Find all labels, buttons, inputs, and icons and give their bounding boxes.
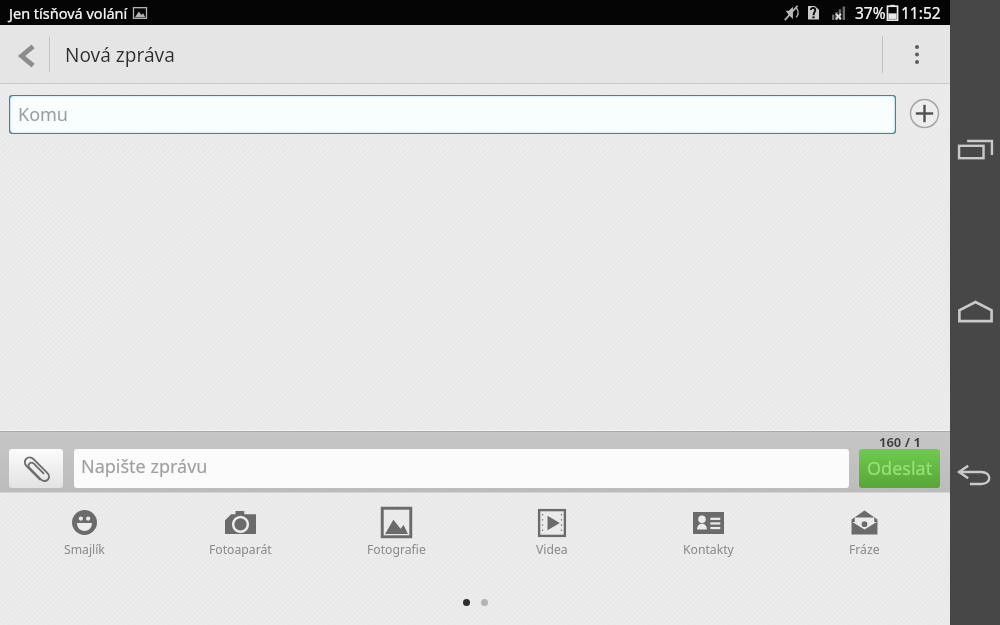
button[interactable]: Komu (9, 95, 896, 134)
button[interactable]: Back (950, 449, 1000, 499)
button[interactable]: Fotoaparát (162, 493, 318, 563)
button[interactable]: More options (883, 25, 950, 84)
button[interactable]: Add recipient (906, 95, 942, 131)
staticText: Nová zpráva (65, 42, 175, 68)
staticText: 11:52 (901, 2, 941, 23)
button[interactable]: Back (0, 25, 49, 84)
staticText: Smajlík (64, 541, 105, 558)
button[interactable]: Kontakty (630, 493, 786, 563)
staticText: 37% (855, 2, 886, 23)
button[interactable]: Odeslat (859, 449, 940, 488)
staticText: 160 / 1 (879, 433, 921, 451)
staticText: Fotoaparát (209, 541, 272, 558)
button[interactable]: Fotografie (318, 493, 474, 563)
staticText: Komu (18, 102, 68, 127)
button[interactable]: Attach (9, 449, 63, 488)
staticText: Odeslat (867, 456, 933, 481)
button[interactable]: Videa (474, 493, 630, 563)
button[interactable]: Napište zprávu (74, 449, 849, 488)
staticText: Fotografie (367, 541, 426, 558)
staticText: Napište zprávu (81, 454, 208, 479)
staticText: Jen tísňová volání (9, 3, 128, 23)
button[interactable]: Home (950, 286, 1000, 336)
staticText: Videa (536, 541, 568, 558)
staticText: Kontakty (683, 541, 734, 558)
button[interactable]: Smajlík (6, 493, 162, 563)
button[interactable]: Recent apps (950, 124, 1000, 174)
staticText: Fráze (849, 541, 880, 558)
button[interactable]: Fráze (786, 493, 942, 563)
